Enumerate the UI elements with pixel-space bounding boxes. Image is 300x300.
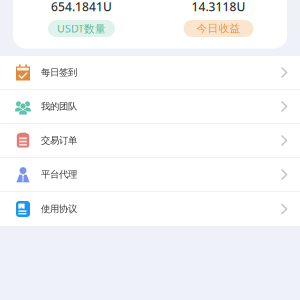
button[interactable]: 使用协议	[0, 192, 300, 226]
staticText: USDT数量	[57, 21, 106, 36]
staticText: 每日签到	[41, 67, 77, 78]
button[interactable]: 平台代理	[0, 158, 300, 192]
staticText: 使用协议	[41, 203, 77, 215]
staticText: 交易订单	[41, 135, 77, 146]
staticText: 14.3118U	[191, 0, 245, 14]
button[interactable]: 我的团队	[0, 90, 300, 124]
staticText: 平台代理	[41, 169, 77, 180]
button[interactable]: 每日签到	[0, 56, 300, 90]
staticText: 我的团队	[41, 101, 77, 112]
staticText: 今日收益	[196, 22, 240, 35]
button[interactable]: 交易订单	[0, 124, 300, 158]
staticText: 654.1841U	[51, 0, 112, 14]
